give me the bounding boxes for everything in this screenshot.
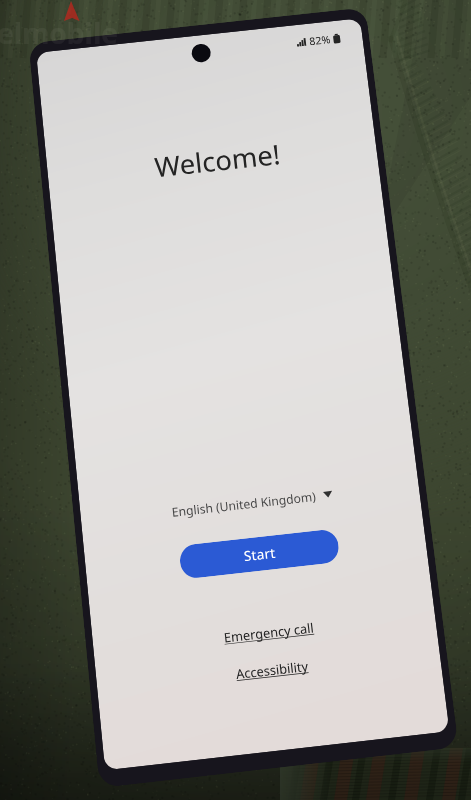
button[interactable]: Emergency call [217, 613, 321, 652]
button[interactable]: English (United Kingdom) [164, 479, 340, 527]
staticText: Start [243, 543, 277, 565]
staticText: Welcome! [153, 135, 282, 185]
button[interactable]: Accessibility [229, 652, 315, 689]
staticText: English (United Kingdom) [171, 488, 317, 520]
staticText: elmobile [0, 14, 118, 52]
staticText: 82% [308, 32, 331, 48]
staticText: Accessibility [235, 657, 309, 683]
staticText: Emergency call [223, 619, 315, 647]
button[interactable]: Start [178, 528, 340, 580]
